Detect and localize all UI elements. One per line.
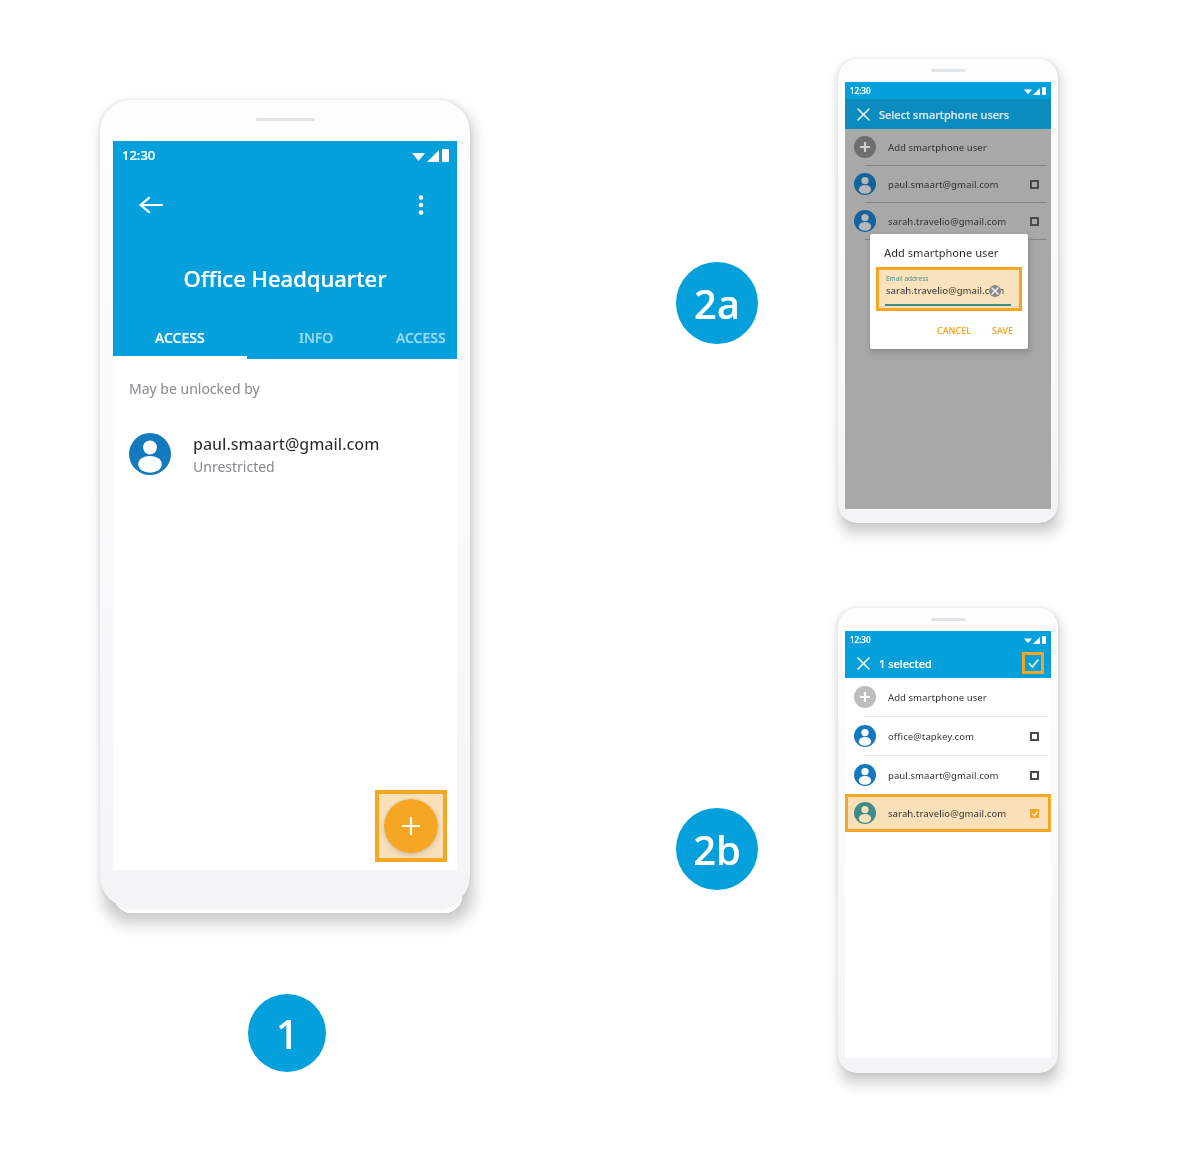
staticText: SAVE [992,324,1014,336]
staticText: ACCESS [155,328,205,347]
staticText: 1 selected [879,656,932,671]
staticText: Unrestricted [193,457,275,476]
button[interactable]: CANCEL [931,321,978,339]
button[interactable]: More options [399,183,443,227]
staticText: Add smartphone user [888,691,1042,704]
staticText: paul.smaart@gmail.com [888,769,1030,782]
staticText: 2a [694,276,740,330]
staticText: ACCESS [396,328,446,347]
staticText: 12:30 [850,634,871,645]
button[interactable]: Add [384,799,438,853]
button[interactable]: ACCESS [113,315,247,359]
staticText: Add smartphone user [888,141,1042,154]
button[interactable]: sarah.travelio@gmail.com [845,794,1051,832]
button[interactable]: Confirm [1022,652,1044,674]
staticText: paul.smaart@gmail.com [888,178,1030,191]
button[interactable]: Add smartphone user [845,129,1051,165]
staticText: May be unlocked by [129,379,260,398]
staticText: 12:30 [850,85,871,96]
staticText: Office Headquarter [183,263,387,293]
staticText: 2b [693,822,741,876]
button[interactable]: office@tapkey.com [845,717,1051,755]
button[interactable]: ACCESS [385,315,457,359]
staticText: office@tapkey.com [888,730,1030,743]
button[interactable]: paul.smaart@gmail.com [845,756,1051,794]
button[interactable]: Clear [989,285,1001,297]
button[interactable]: sarah.travelio@gmail.com [845,203,1051,239]
button[interactable]: Close [853,104,873,124]
button[interactable]: Back [129,183,173,227]
button[interactable]: paul.smaart@gmail.com [845,166,1051,202]
staticText: Add smartphone user [884,245,999,260]
staticText: Select smartphone users [879,107,1010,122]
button[interactable]: INFO [247,315,385,359]
staticText: INFO [299,328,334,347]
button[interactable]: paul.smaart@gmail.com [113,419,457,489]
staticText: 1 [276,1006,299,1060]
button[interactable]: Close [853,653,873,673]
staticText: sarah.travelio@gmail.com [888,807,1030,820]
staticText: paul.smaart@gmail.com [193,433,380,455]
staticText: Email address [886,274,929,283]
staticText: sarah.travelio@gmail.com [888,215,1030,228]
staticText: CANCEL [937,324,972,336]
button[interactable]: SAVE [986,321,1020,339]
button[interactable]: Add smartphone user [845,678,1051,716]
staticText: sarah.travelio@gmail.com [886,284,1005,297]
staticText: 12:30 [122,146,156,164]
